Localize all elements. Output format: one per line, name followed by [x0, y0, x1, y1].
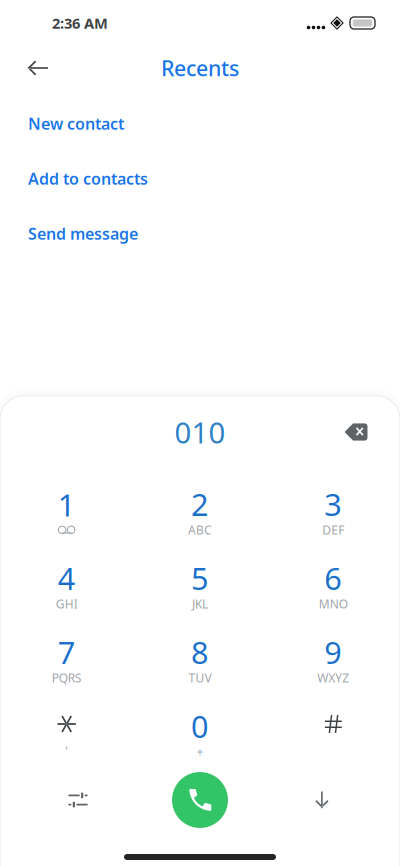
- staticText: 8: [191, 632, 209, 672]
- staticText: JKL: [192, 596, 208, 612]
- staticText: 4: [58, 558, 76, 598]
- button[interactable]: 4: [0, 546, 133, 620]
- staticText: 9: [324, 632, 342, 672]
- staticText: 2:36 AM: [52, 13, 108, 33]
- button[interactable]: 0: [133, 694, 267, 768]
- staticText: ABC: [188, 522, 212, 538]
- staticText: 7: [58, 632, 76, 672]
- button[interactable]: 9: [267, 620, 400, 694]
- button[interactable]: 7: [0, 620, 133, 694]
- button[interactable]: Dialpad options: [0, 768, 156, 832]
- button[interactable]: 3: [267, 472, 400, 546]
- button[interactable]: Call: [156, 768, 244, 832]
- staticText: Send message: [28, 223, 138, 244]
- staticText: TUV: [188, 670, 211, 686]
- staticText: 0: [191, 706, 209, 746]
- button[interactable]: 1: [0, 472, 133, 546]
- staticText: 1: [58, 484, 76, 525]
- staticText: Recents: [161, 54, 239, 82]
- staticText: New contact: [28, 113, 124, 134]
- button[interactable]: Add to contacts: [0, 151, 400, 206]
- button[interactable]: Send message: [0, 206, 400, 261]
- button[interactable]: Delete: [328, 408, 384, 456]
- staticText: 010: [174, 412, 225, 451]
- button[interactable]: ,: [0, 694, 133, 768]
- button[interactable]: Hide keypad: [244, 768, 400, 832]
- staticText: GHI: [56, 596, 78, 612]
- staticText: Add to contacts: [28, 168, 148, 189]
- staticText: DEF: [322, 522, 344, 538]
- staticText: MNO: [319, 596, 348, 612]
- button[interactable]: 5: [133, 546, 267, 620]
- button[interactable]: Back: [16, 46, 60, 90]
- button[interactable]: 6: [267, 546, 400, 620]
- staticText: +: [196, 744, 203, 760]
- button[interactable]: 2: [133, 472, 267, 546]
- staticText: ,: [65, 735, 68, 751]
- staticText: 3: [324, 484, 342, 524]
- button[interactable]: [267, 694, 400, 768]
- button[interactable]: 8: [133, 620, 267, 694]
- staticText: 5: [191, 558, 209, 598]
- staticText: WXYZ: [317, 670, 349, 686]
- staticText: 2: [191, 484, 209, 524]
- button[interactable]: New contact: [0, 96, 400, 151]
- staticText: 6: [324, 558, 342, 598]
- staticText: PQRS: [52, 670, 82, 686]
